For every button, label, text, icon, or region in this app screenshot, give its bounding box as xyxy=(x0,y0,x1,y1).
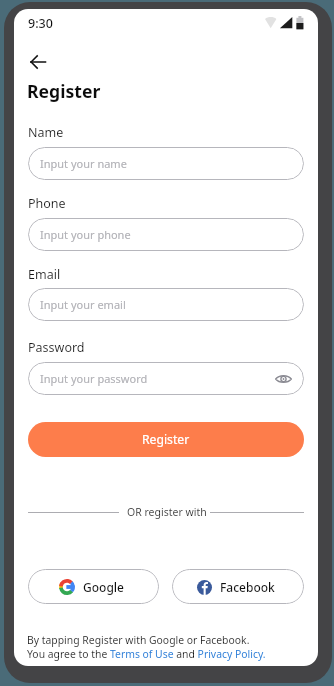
button[interactable]: Facebook xyxy=(172,569,304,604)
button[interactable]: Input your password xyxy=(28,362,304,395)
staticText: By tapping Register with Google or Faceb… xyxy=(27,633,266,661)
button[interactable]: Google xyxy=(28,569,159,604)
staticText: Email xyxy=(28,266,61,283)
staticText: Input your email xyxy=(40,297,126,312)
button[interactable]: Input your name xyxy=(28,147,304,180)
staticText: Password xyxy=(28,339,85,356)
button[interactable]: Back xyxy=(18,42,58,82)
staticText: Input your password xyxy=(40,371,148,386)
staticText: 9:30 xyxy=(28,15,53,32)
staticText: Register xyxy=(27,79,101,103)
button[interactable]: Register xyxy=(28,422,304,457)
staticText: OR register with xyxy=(127,505,207,519)
staticText: Name xyxy=(28,124,64,141)
staticText: Phone xyxy=(28,195,66,212)
button[interactable]: Input your email xyxy=(28,288,304,321)
staticText: Facebook xyxy=(220,579,275,595)
button[interactable]: Input your phone xyxy=(28,218,304,251)
staticText: Input your phone xyxy=(40,227,131,242)
staticText: Input your name xyxy=(40,156,127,171)
staticText: Register xyxy=(142,431,190,448)
staticText: Google xyxy=(83,579,124,595)
